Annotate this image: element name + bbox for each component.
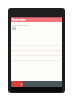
- button[interactable]: Close: [12, 81, 23, 87]
- button[interactable]: [11, 81, 62, 87]
- button[interactable]: New note: [11, 18, 62, 22]
- staticText: New note: [12, 18, 26, 22]
- staticText: Title goes here: [12, 23, 30, 26]
